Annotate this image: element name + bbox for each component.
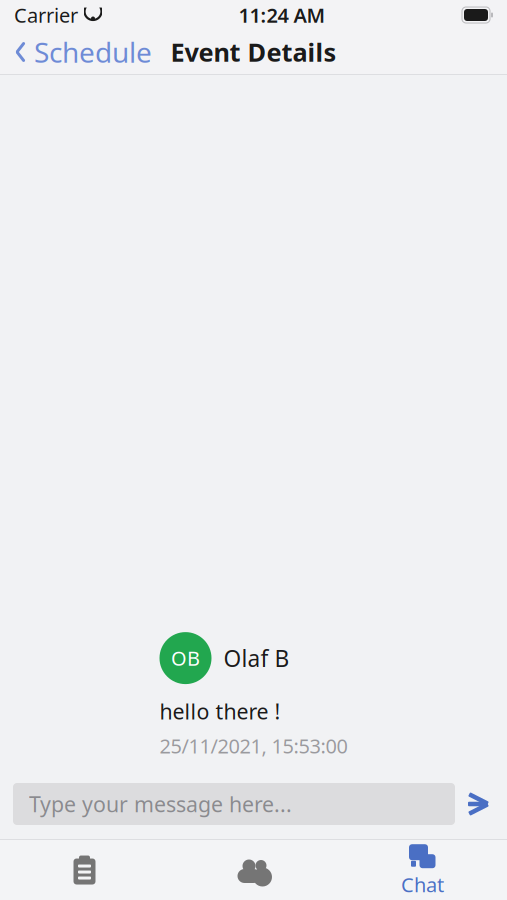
staticText: OB bbox=[171, 645, 200, 671]
button[interactable]: Schedule bbox=[0, 841, 169, 899]
staticText: Schedule bbox=[34, 33, 152, 71]
button[interactable]: Schedule bbox=[0, 30, 166, 74]
staticText: Olaf B bbox=[223, 643, 289, 673]
staticText: hello there ! bbox=[159, 697, 280, 725]
button[interactable]: Chat bbox=[338, 841, 507, 899]
button[interactable]: Participants bbox=[169, 841, 338, 899]
staticText: Type your message here... bbox=[29, 790, 292, 818]
button[interactable]: Type your message here... bbox=[13, 783, 455, 825]
staticText: Carrier bbox=[14, 2, 78, 28]
staticText: 11:24 AM bbox=[238, 2, 325, 28]
staticText: Chat bbox=[401, 871, 444, 898]
staticText: Event Details bbox=[170, 35, 336, 69]
staticText: 25/11/2021, 15:53:00 bbox=[159, 732, 347, 759]
button[interactable]: Send bbox=[455, 781, 503, 827]
